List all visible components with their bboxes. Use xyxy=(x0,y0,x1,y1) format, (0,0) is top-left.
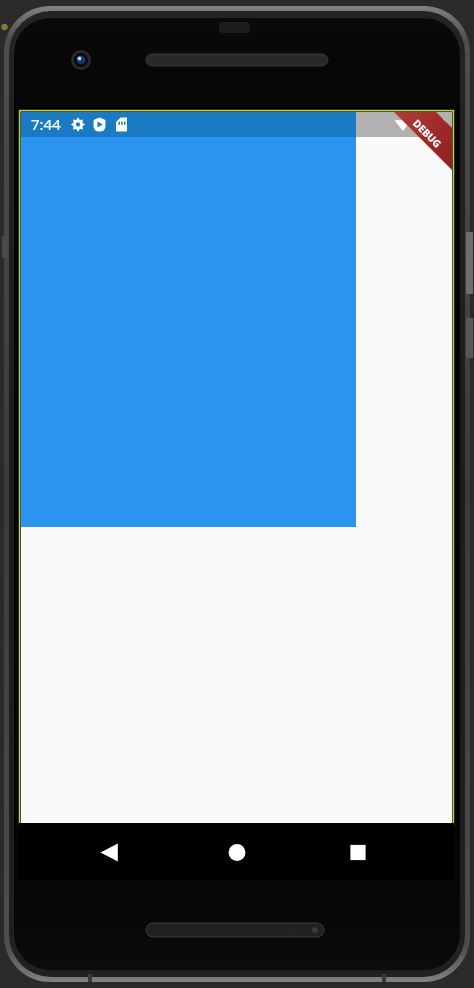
staticText: DEBUG xyxy=(410,116,445,151)
button[interactable]: Home xyxy=(213,827,261,875)
button[interactable]: Recent apps xyxy=(334,827,382,875)
button[interactable]: Back xyxy=(86,827,134,875)
staticText: 7:44 xyxy=(31,114,61,134)
